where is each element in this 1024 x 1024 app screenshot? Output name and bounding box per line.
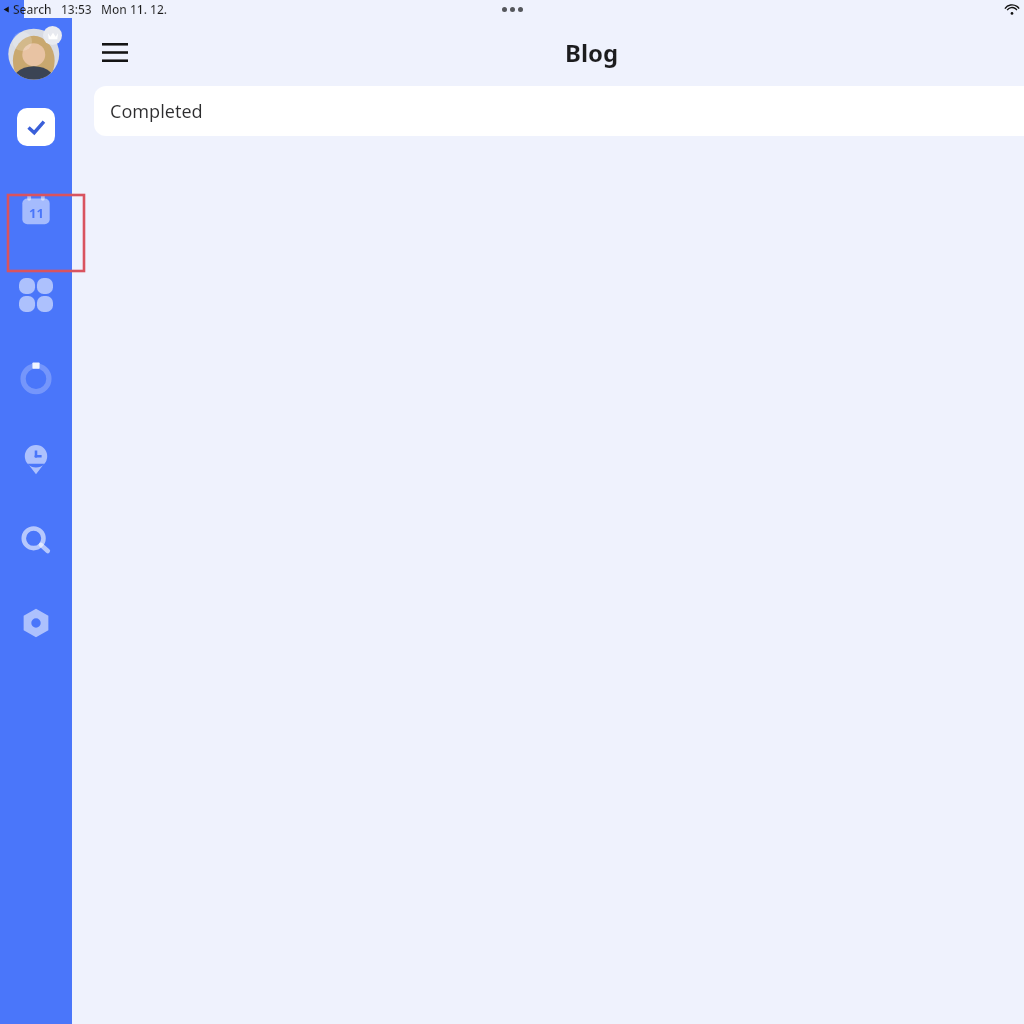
- staticText: Completed: [110, 99, 203, 124]
- staticText: 13:53: [61, 1, 92, 17]
- button[interactable]: Completed: [94, 86, 1024, 136]
- button[interactable]: Calendar: [16, 191, 56, 231]
- button[interactable]: Progress: [16, 357, 56, 397]
- button[interactable]: Profile: [8, 25, 64, 81]
- button[interactable]: Recent: [16, 439, 56, 479]
- button[interactable]: Settings: [16, 603, 56, 643]
- staticText: Blog: [565, 36, 619, 69]
- staticText: Mon 11. 12.: [101, 1, 168, 17]
- button[interactable]: Tasks: [16, 107, 56, 147]
- button[interactable]: Apps: [16, 275, 56, 315]
- staticText: Search: [13, 1, 52, 17]
- staticText: 11: [29, 204, 44, 222]
- button[interactable]: Menu: [94, 31, 136, 73]
- button[interactable]: Search: [16, 521, 56, 561]
